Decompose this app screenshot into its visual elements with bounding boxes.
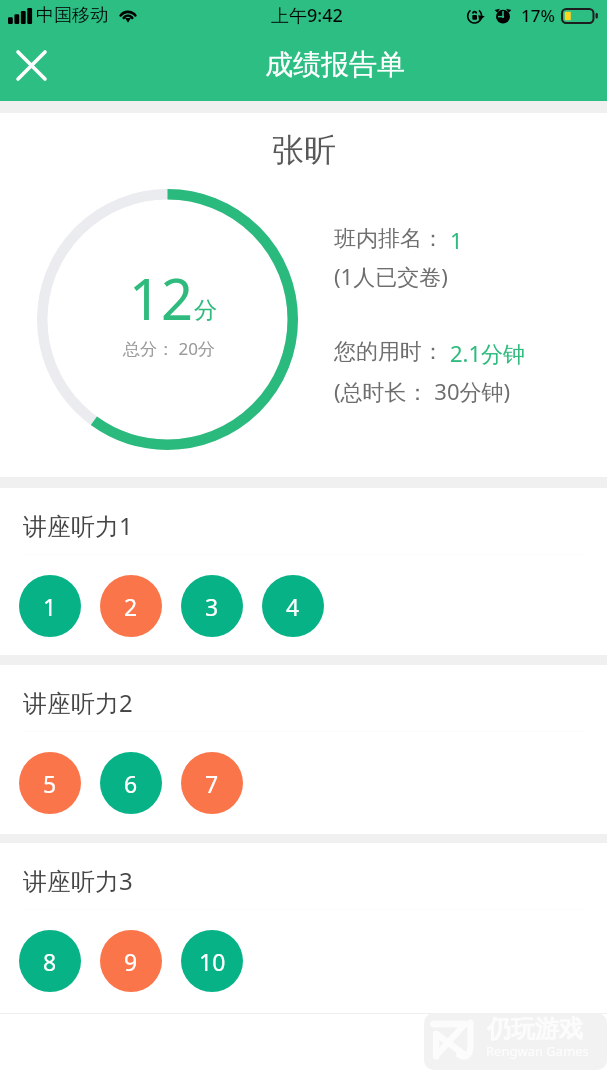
staticText: 上午9:42 (271, 3, 343, 28)
button[interactable]: 1 (19, 575, 81, 637)
button[interactable]: 2 (100, 575, 162, 637)
staticText: 班内排名： (334, 225, 444, 253)
staticText: 6 (124, 768, 138, 799)
staticText: 12 (129, 260, 194, 336)
staticText: 讲座听力3 (23, 864, 133, 897)
button[interactable]: 10 (181, 930, 243, 992)
staticText: 2.1分钟 (450, 338, 526, 368)
button[interactable]: 7 (181, 752, 243, 814)
staticText: 3 (205, 591, 219, 622)
button[interactable]: 3 (181, 575, 243, 637)
staticText: 仍玩游戏 (487, 1014, 583, 1044)
staticText: 分 (194, 296, 217, 325)
staticText: Rengwan Games (486, 1042, 589, 1060)
staticText: 1 (450, 225, 463, 255)
button[interactable]: 8 (19, 930, 81, 992)
staticText: 5 (43, 768, 57, 799)
staticText: 1 (43, 591, 57, 622)
staticText: 2 (124, 591, 138, 622)
staticText: 8 (43, 946, 57, 977)
staticText: (总时长： 30分钟) (334, 376, 511, 406)
staticText: 10 (199, 946, 226, 977)
staticText: 讲座听力1 (23, 509, 133, 542)
staticText: 总分： 20分 (123, 337, 215, 360)
button[interactable]: 6 (100, 752, 162, 814)
staticText: 7 (205, 768, 219, 799)
staticText: (1人已交卷) (334, 261, 448, 291)
button[interactable]: 4 (262, 575, 324, 637)
button[interactable]: Close (1, 35, 62, 96)
button[interactable]: 5 (19, 752, 81, 814)
staticText: 您的用时： (334, 338, 444, 366)
staticText: 张昕 (272, 130, 336, 170)
staticText: 4 (286, 591, 300, 622)
button[interactable]: 9 (100, 930, 162, 992)
staticText: 讲座听力2 (23, 686, 133, 719)
staticText: 中国移动 (36, 4, 108, 27)
staticText: 17% (521, 4, 555, 27)
staticText: 成绩报告单 (265, 47, 405, 82)
staticText: 9 (124, 946, 138, 977)
